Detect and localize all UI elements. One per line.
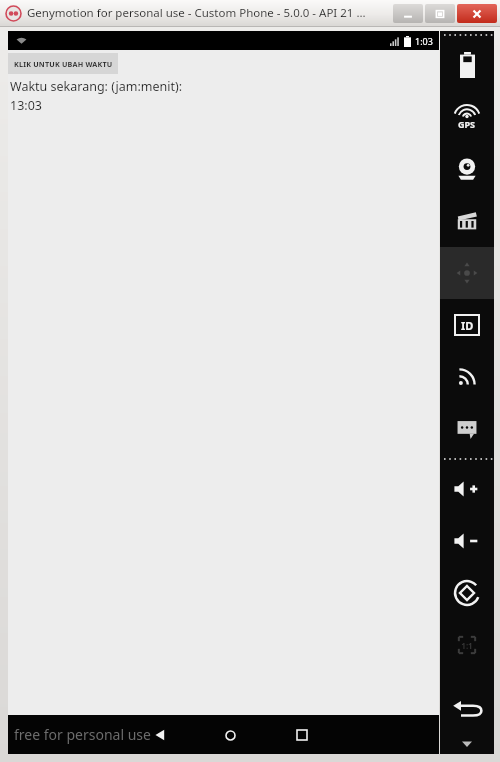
staticText: Genymotion for personal use - Custom Pho…: [27, 5, 366, 21]
button[interactable]: Rotate: [440, 567, 494, 619]
staticText: free for personal use: [14, 725, 151, 744]
staticText: ID: [461, 318, 474, 333]
button[interactable]: Battery: [440, 39, 494, 91]
button[interactable]: Messages: [440, 403, 494, 455]
button[interactable]: GPS: [440, 91, 494, 143]
button[interactable]: Maximize: [425, 4, 455, 23]
staticText: GPS: [458, 118, 476, 130]
button[interactable]: Recent apps: [286, 719, 318, 751]
button[interactable]: Move: [440, 247, 494, 299]
button[interactable]: KLIK UNTUK UBAH WAKTU: [8, 53, 118, 74]
button[interactable]: Back: [440, 682, 494, 734]
button[interactable]: More: [440, 734, 494, 754]
button[interactable]: Network: [440, 351, 494, 403]
button[interactable]: Scale 1 to 1: [440, 619, 494, 671]
button[interactable]: Volume down: [440, 515, 494, 567]
button[interactable]: Close: [457, 4, 497, 23]
button[interactable]: Camera: [440, 143, 494, 195]
button[interactable]: Video: [440, 195, 494, 247]
staticText: KLIK UNTUK UBAH WAKTU: [14, 59, 113, 69]
staticText: 13:03: [10, 97, 42, 114]
button[interactable]: Volume up: [440, 463, 494, 515]
staticText: 1:03: [415, 35, 433, 47]
button[interactable]: Home: [214, 719, 246, 751]
staticText: 1:1: [461, 640, 473, 651]
button[interactable]: Minimize: [393, 4, 423, 23]
staticText: Waktu sekarang: (jam:menit):: [10, 78, 183, 95]
button[interactable]: Identifiers: [440, 299, 494, 351]
button[interactable]: Back: [144, 719, 176, 751]
